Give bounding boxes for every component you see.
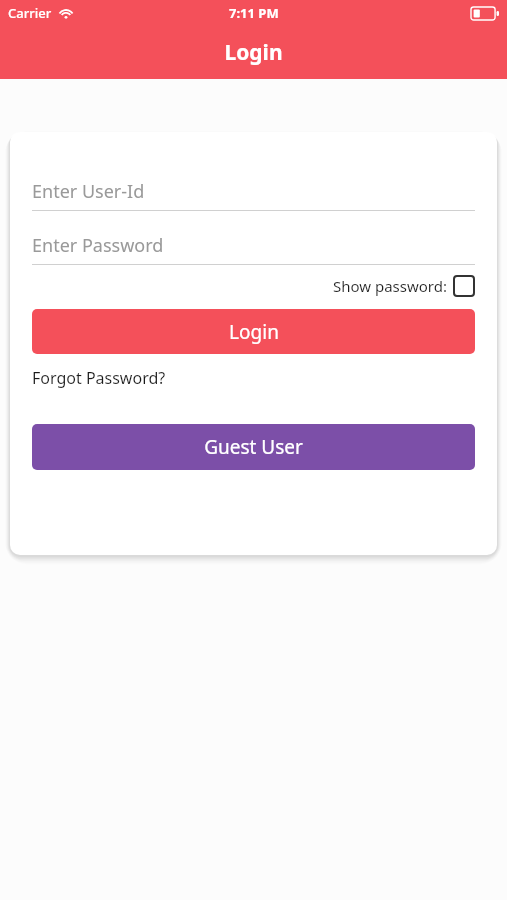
staticText: Login <box>229 319 279 345</box>
button[interactable]: Forgot Password? <box>32 367 166 389</box>
staticText: 7:11 PM <box>229 4 279 22</box>
staticText: Enter User-Id <box>32 179 145 204</box>
staticText: Guest User <box>204 434 303 460</box>
staticText: Show password: <box>333 276 447 296</box>
button[interactable]: Login <box>32 309 475 354</box>
staticText: Login <box>224 38 283 67</box>
button[interactable]: Guest User <box>32 424 475 470</box>
button[interactable]: Enter User-Id <box>32 178 475 211</box>
staticText: Enter Password <box>32 233 164 258</box>
button[interactable]: Enter Password <box>32 232 475 265</box>
staticText: Carrier <box>8 4 52 22</box>
staticText: Forgot Password? <box>32 367 166 389</box>
button[interactable]: Show password: <box>10 275 475 297</box>
other: Wi-Fi signal <box>58 7 74 19</box>
other: Battery <box>471 7 499 20</box>
